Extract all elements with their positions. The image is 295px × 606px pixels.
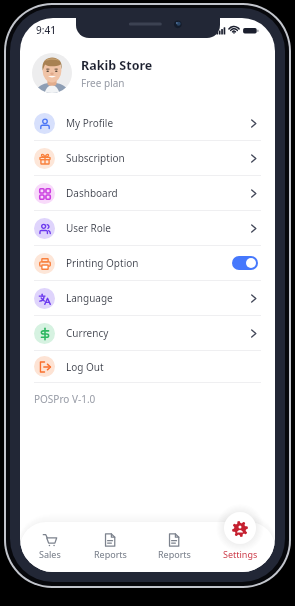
staticText: POSPro V-1.0 bbox=[34, 392, 96, 406]
staticText: Rakib Store bbox=[81, 57, 153, 74]
staticText: Settings bbox=[223, 548, 258, 560]
button[interactable]: My Profile bbox=[20, 106, 275, 140]
staticText: Reports bbox=[158, 548, 191, 560]
staticText: Reports bbox=[94, 548, 127, 560]
staticText: Free plan bbox=[81, 76, 125, 90]
button[interactable]: Printing option toggle bbox=[232, 256, 258, 270]
staticText: My Profile bbox=[66, 116, 114, 130]
button[interactable]: Log Out bbox=[20, 351, 275, 382]
button[interactable]: Reports bbox=[153, 522, 195, 572]
staticText: User Role bbox=[66, 221, 111, 235]
staticText: Language bbox=[66, 291, 113, 305]
staticText: Log Out bbox=[66, 360, 104, 374]
button[interactable]: Sales bbox=[29, 522, 71, 572]
staticText: Dashboard bbox=[66, 186, 118, 200]
staticText: Currency bbox=[66, 326, 109, 340]
button[interactable]: Subscription bbox=[20, 141, 275, 175]
button[interactable]: Language bbox=[20, 281, 275, 315]
button[interactable]: Printing Option bbox=[20, 246, 275, 280]
button[interactable]: Currency bbox=[20, 316, 275, 350]
staticText: Printing Option bbox=[66, 256, 139, 270]
button[interactable]: Dashboard bbox=[20, 176, 275, 210]
button[interactable]: Reports bbox=[89, 522, 131, 572]
button[interactable]: Settings bbox=[219, 522, 261, 572]
staticText: 9:41 bbox=[36, 23, 56, 37]
staticText: Subscription bbox=[66, 151, 125, 165]
staticText: Sales bbox=[39, 548, 61, 560]
button[interactable]: User Role bbox=[20, 211, 275, 245]
